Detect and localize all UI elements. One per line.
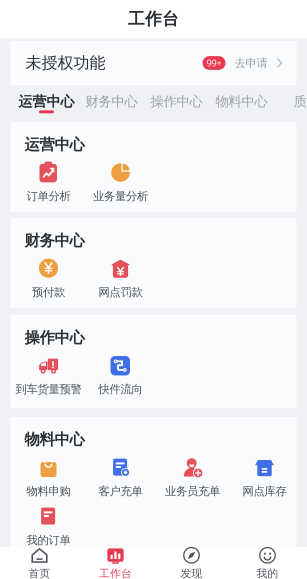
button[interactable]: 到车货量预警 xyxy=(12,354,84,396)
button[interactable]: 操作中心 xyxy=(144,85,209,122)
staticText: 操作中心 xyxy=(24,328,84,347)
staticText: 我的订单 xyxy=(26,533,70,547)
staticText: 运营中心 xyxy=(24,135,84,154)
staticText: 客户充单 xyxy=(98,484,142,498)
staticText: 物料中心 xyxy=(215,93,267,110)
staticText: 业务量分析 xyxy=(93,189,148,203)
staticText: 去申请 xyxy=(234,56,267,70)
button[interactable]: 首页 xyxy=(1,547,77,579)
button[interactable]: 物料申购 xyxy=(12,456,84,498)
staticText: 运营中心 xyxy=(18,93,74,110)
staticText: 质控 xyxy=(293,93,307,110)
button[interactable]: 财务中心 xyxy=(79,85,144,122)
button[interactable]: 未授权功能 xyxy=(10,41,296,85)
staticText: 物料申购 xyxy=(26,484,70,498)
staticText: 操作中心 xyxy=(150,93,202,110)
staticText: 99+ xyxy=(206,57,221,69)
button[interactable]: 预付款 xyxy=(12,257,84,299)
staticText: 物料中心 xyxy=(24,430,84,449)
staticText: 网点罚款 xyxy=(98,285,142,299)
staticText: 工作台 xyxy=(128,8,179,29)
staticText: 工作台 xyxy=(99,567,132,579)
staticText: 财务中心 xyxy=(85,93,137,110)
staticText: 网点库存 xyxy=(242,484,286,498)
button[interactable]: 业务员充单 xyxy=(156,456,228,498)
staticText: 订单分析 xyxy=(26,189,70,203)
staticText: 财务中心 xyxy=(24,231,84,250)
button[interactable]: 物料中心 xyxy=(209,85,274,122)
staticText: 快件流向 xyxy=(98,382,142,396)
button[interactable]: 我的 xyxy=(229,547,305,579)
button[interactable]: 工作台 xyxy=(77,547,153,579)
button[interactable]: 网点库存 xyxy=(228,456,300,498)
staticText: 我的 xyxy=(256,567,278,579)
staticText: 业务员充单 xyxy=(165,484,220,498)
staticText: 首页 xyxy=(28,567,50,579)
button[interactable]: 快件流向 xyxy=(84,354,156,396)
button[interactable]: 质控 xyxy=(274,85,307,122)
button[interactable]: 运营中心 xyxy=(14,85,79,122)
staticText: 发现 xyxy=(180,567,202,579)
button[interactable]: 发现 xyxy=(153,547,229,579)
button[interactable]: 网点罚款 xyxy=(84,257,156,299)
button[interactable]: 客户充单 xyxy=(84,456,156,498)
button[interactable]: 我的订单 xyxy=(12,505,84,547)
button[interactable]: 业务量分析 xyxy=(84,161,156,203)
staticText: 到车货量预警 xyxy=(15,382,81,396)
staticText: 预付款 xyxy=(32,285,65,299)
button[interactable]: 订单分析 xyxy=(12,161,84,203)
staticText: 未授权功能 xyxy=(25,53,105,73)
